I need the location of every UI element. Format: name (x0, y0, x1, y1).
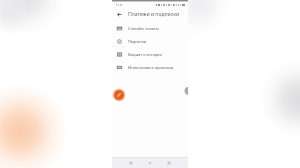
button[interactable]: Open panel (184, 87, 188, 95)
button[interactable]: Back (112, 7, 126, 21)
button[interactable]: Home (146, 159, 154, 167)
staticText: Платежи и подписки (128, 11, 180, 18)
staticText: Бюджет и история (128, 52, 162, 57)
staticText: Способы оплаты (128, 26, 159, 31)
button[interactable]: Edit (112, 88, 126, 102)
staticText: Использовать промокод (128, 65, 174, 70)
button[interactable]: Подписки (112, 35, 188, 48)
button[interactable]: Способы оплаты (112, 22, 188, 35)
button[interactable]: Recents (165, 159, 173, 167)
button[interactable]: Использовать промокод (112, 61, 188, 74)
button[interactable]: Бюджет и история (112, 48, 188, 61)
staticText: Подписки (128, 39, 147, 44)
button[interactable]: Back (127, 159, 135, 167)
